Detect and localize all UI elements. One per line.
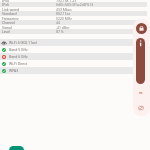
button[interactable]: Signal bbox=[0, 25, 147, 30]
button[interactable]: Frequency bbox=[0, 16, 147, 21]
staticText: fe80::f4f3:3f1a:2c8f%13 bbox=[56, 2, 94, 7]
button[interactable]: Band 6 GHz bbox=[0, 53, 147, 60]
staticText: Standard bbox=[2, 11, 17, 16]
staticText: 5220 MHz bbox=[56, 16, 72, 21]
button[interactable]: Wi-Fi Direct bbox=[0, 60, 147, 67]
staticText: Frequency bbox=[2, 16, 19, 21]
button[interactable]: Screenshot bbox=[136, 103, 146, 113]
staticText: Wi-Fi 6 (802.11ax) bbox=[9, 40, 37, 45]
staticText: 433 Mbps bbox=[56, 7, 72, 12]
button[interactable]: Standard bbox=[0, 11, 147, 16]
button[interactable]: IPv4 bbox=[0, 0, 147, 3]
staticText: 802.11ax bbox=[56, 11, 71, 16]
button[interactable]: Information bbox=[136, 38, 145, 84]
button[interactable]: Band 5 GHz bbox=[0, 46, 147, 53]
button[interactable]: Link speed bbox=[0, 7, 147, 12]
button[interactable]: Signal strength bbox=[136, 88, 146, 98]
staticText: 87 % bbox=[56, 29, 64, 34]
button[interactable]: IPv6 bbox=[0, 2, 147, 7]
staticText: Channel bbox=[2, 20, 16, 25]
staticText: Link speed bbox=[2, 7, 20, 12]
button[interactable]: Wi-Fi 6 (802.11ax) bbox=[0, 39, 147, 46]
staticText: WPA3 bbox=[9, 68, 19, 73]
staticText: IPv4 bbox=[2, 0, 9, 3]
staticText: Band 6 GHz bbox=[9, 54, 28, 59]
staticText: 192.168.1.23 bbox=[56, 0, 77, 3]
button[interactable]: Add network bbox=[9, 146, 24, 150]
button[interactable]: Security bbox=[136, 23, 147, 34]
button[interactable]: Channel bbox=[0, 20, 147, 25]
staticText: 44 bbox=[56, 20, 60, 25]
staticText: -41 dBm bbox=[56, 25, 70, 30]
staticText: Signal bbox=[2, 25, 12, 30]
button[interactable]: Level bbox=[0, 29, 147, 34]
staticText: Wi-Fi Direct bbox=[9, 61, 28, 66]
staticText: Level bbox=[2, 29, 11, 34]
staticText: Band 5 GHz bbox=[9, 47, 28, 52]
button[interactable]: WPA3 bbox=[0, 67, 147, 74]
staticText: IPv6 bbox=[2, 2, 9, 7]
